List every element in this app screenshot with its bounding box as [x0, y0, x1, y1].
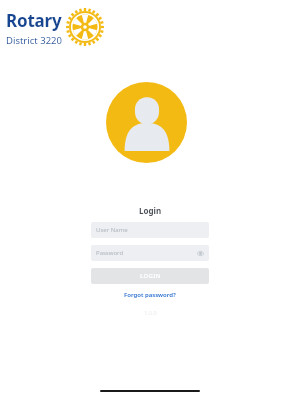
button[interactable]: Password: [91, 245, 209, 261]
staticText: LOGIN: [140, 272, 161, 280]
staticText: District 3220: [6, 34, 62, 47]
button[interactable]: Profile picture: [106, 82, 187, 163]
button[interactable]: User Name: [91, 222, 209, 238]
button[interactable]: Forgot password?: [120, 290, 180, 300]
button[interactable]: LOGIN: [91, 268, 209, 284]
button[interactable]: Show password: [196, 249, 205, 258]
staticText: 1.0.0: [144, 309, 157, 316]
staticText: User Name: [96, 226, 128, 234]
staticText: Rotary: [6, 9, 62, 32]
staticText: Forgot password?: [124, 291, 176, 299]
staticText: Password: [96, 249, 124, 257]
button[interactable]: Rotary: [6, 8, 104, 48]
staticText: Login: [139, 205, 162, 216]
